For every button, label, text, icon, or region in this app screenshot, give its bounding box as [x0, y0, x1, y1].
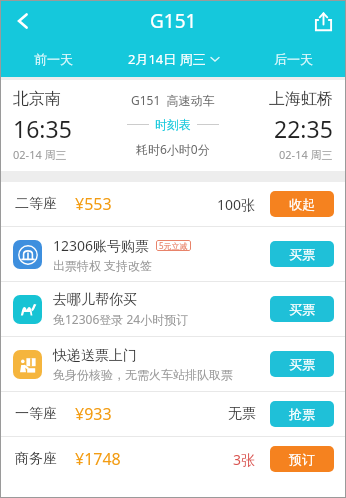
staticText: 16:35	[13, 113, 72, 144]
staticText: 后一天	[274, 51, 313, 67]
staticText: 买票	[289, 356, 315, 372]
button[interactable]: 买票	[270, 241, 334, 267]
staticText: 买票	[289, 246, 315, 262]
staticText: ¥933	[75, 403, 112, 425]
staticText: G151	[150, 8, 197, 34]
button[interactable]: 后一天	[241, 41, 345, 77]
button[interactable]: 快递送票上门	[1, 337, 345, 391]
staticText: 收起	[289, 196, 315, 212]
button[interactable]: 买票	[270, 351, 334, 377]
staticText: 5元立减	[159, 240, 188, 251]
staticText: 上海虹桥	[269, 89, 333, 109]
staticText: 快递送票上门	[53, 347, 137, 365]
button[interactable]: 商务座	[1, 437, 345, 481]
staticText: 预订	[289, 451, 315, 467]
staticText: 去哪儿帮你买	[53, 291, 137, 309]
staticText: 买票	[289, 301, 315, 317]
button[interactable]: 收起	[270, 191, 334, 217]
button[interactable]: 抢票	[270, 401, 334, 427]
staticText: 二等座	[15, 195, 57, 213]
staticText: 02-14 周三	[279, 147, 333, 162]
button[interactable]: Back	[1, 1, 45, 41]
staticText: G151 高速动车	[131, 92, 215, 108]
staticText: 02-14 周三	[13, 147, 67, 162]
staticText: 22:35	[274, 113, 333, 144]
staticText: ¥1748	[75, 448, 121, 470]
button[interactable]: 二等座	[1, 182, 345, 226]
button[interactable]: 12306账号购票	[1, 227, 345, 281]
staticText: 免身份核验，无需火车站排队取票	[53, 367, 233, 382]
button[interactable]: 2月14日 周三	[105, 41, 241, 77]
staticText: 抢票	[289, 406, 315, 422]
button[interactable]: Share	[301, 1, 345, 41]
staticText: 3张	[233, 450, 256, 469]
button[interactable]: 一等座	[1, 392, 345, 436]
staticText: 前一天	[34, 51, 73, 67]
staticText: 12306账号购票	[53, 236, 150, 255]
staticText: 免12306登录 24小时预订	[53, 311, 189, 327]
staticText: 一等座	[15, 405, 57, 423]
staticText: 出票特权 支持改签	[53, 257, 153, 273]
button[interactable]: 时刻表	[127, 117, 219, 132]
staticText: 耗时6小时0分	[136, 141, 210, 157]
button[interactable]: 买票	[270, 296, 334, 322]
button[interactable]: 前一天	[1, 41, 105, 77]
staticText: 时刻表	[155, 117, 191, 132]
button[interactable]: 预订	[270, 446, 334, 472]
staticText: 100张	[217, 195, 256, 214]
staticText: 2月14日 周三	[128, 50, 206, 68]
staticText: 无票	[228, 405, 256, 423]
staticText: 商务座	[15, 450, 57, 468]
button[interactable]: 去哪儿帮你买	[1, 282, 345, 336]
staticText: 北京南	[13, 89, 61, 109]
staticText: ¥553	[75, 193, 112, 215]
